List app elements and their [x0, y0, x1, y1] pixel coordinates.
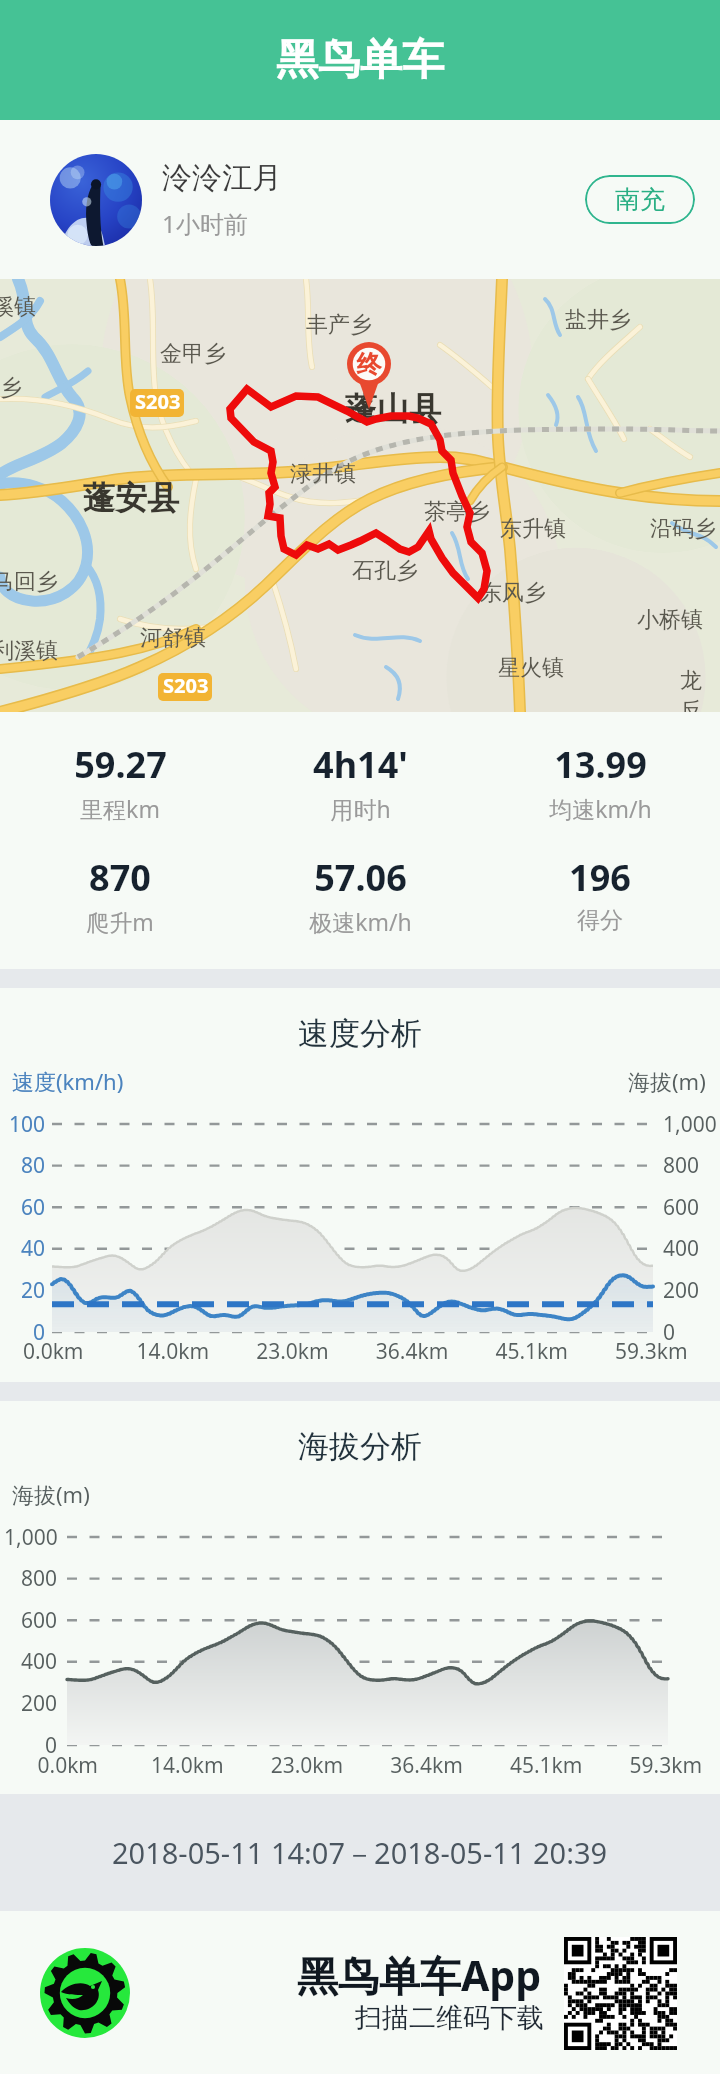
button[interactable]: QR code [564, 1937, 677, 2050]
staticText: 用时h [330, 793, 391, 824]
button[interactable]: 4h14' [240, 740, 480, 824]
staticText: 1小时前 [162, 207, 248, 240]
button[interactable]: 870 [0, 853, 240, 937]
button[interactable] [0, 1401, 720, 1794]
staticText: 57.06 [314, 853, 407, 902]
button[interactable]: App logo [40, 1948, 130, 2038]
button[interactable]: 黑鸟单车 [0, 0, 720, 120]
staticText: 黑鸟单车App [297, 1947, 542, 2003]
button[interactable]: 57.06 [240, 853, 480, 937]
button[interactable]: 南充 [585, 175, 695, 224]
button[interactable]: 黑鸟单车App [297, 1947, 542, 2003]
staticText: 4h14' [313, 740, 408, 789]
staticText: 扫描二维码下载 [355, 2001, 544, 2035]
staticText: 59.27 [74, 740, 167, 789]
button[interactable]: 13.99 [480, 740, 720, 824]
staticText: 196 [569, 853, 631, 902]
staticText: 得分 [577, 906, 623, 935]
staticText: 13.99 [554, 740, 647, 789]
staticText: 里程km [80, 793, 160, 824]
button[interactable]: 泠泠江月 [0, 120, 720, 279]
button[interactable] [0, 988, 720, 1382]
staticText: 均速km/h [549, 793, 652, 824]
button[interactable]: 196 [480, 853, 720, 935]
staticText: 爬升m [86, 906, 154, 937]
button[interactable]: 59.27 [0, 740, 240, 824]
staticText: 2018-05-11 14:07－2018-05-11 20:39 [112, 1833, 608, 1873]
staticText: 极速km/h [309, 906, 412, 937]
button[interactable]: Route map [0, 279, 720, 712]
staticText: 泠泠江月 [162, 159, 282, 197]
staticText: 南充 [615, 184, 665, 215]
staticText: 黑鸟单车 [276, 34, 444, 87]
staticText: 870 [89, 853, 151, 902]
